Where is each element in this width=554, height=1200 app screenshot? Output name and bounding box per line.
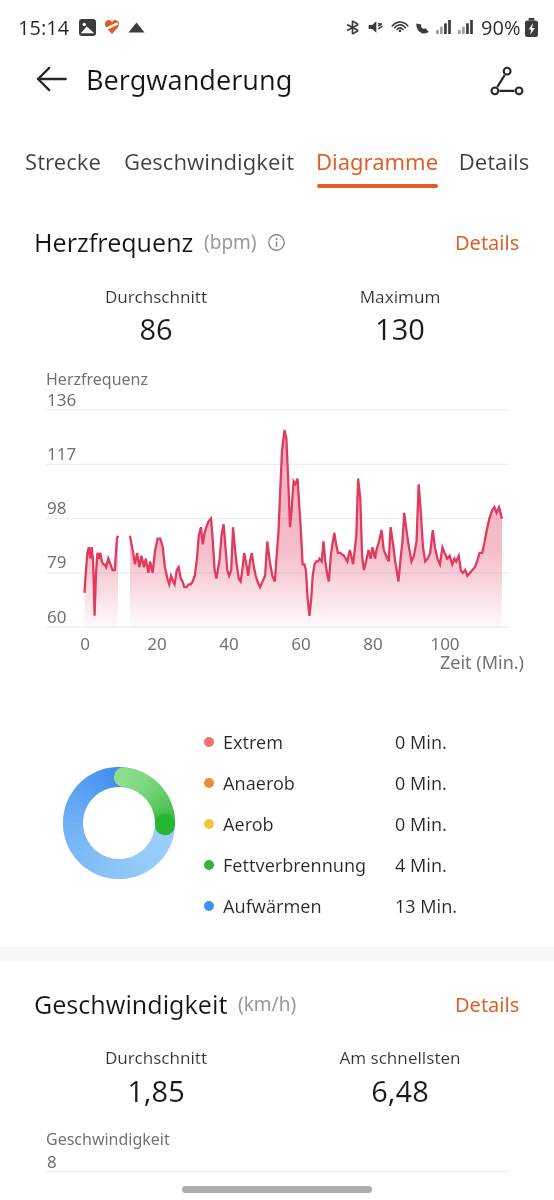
staticText: Anaerob <box>223 771 295 796</box>
staticText: Strecke <box>13 146 113 176</box>
button[interactable]: Aufwärmen <box>196 886 516 926</box>
staticText: 86 <box>56 309 256 348</box>
staticText: 4 Min. <box>395 853 447 878</box>
staticText: Bergwanderung <box>86 61 293 98</box>
staticText: 13 Min. <box>395 894 458 919</box>
staticText: 117 <box>47 442 77 465</box>
button[interactable]: Details <box>440 983 520 1025</box>
staticText: Details <box>455 229 520 256</box>
staticText: 79 <box>47 550 67 573</box>
staticText: 98 <box>47 496 67 519</box>
staticText: 15:14 <box>18 14 70 41</box>
staticText: 1,85 <box>56 1071 256 1110</box>
staticText: Geschwindigkeit <box>109 146 309 176</box>
staticText: 20 <box>132 632 182 655</box>
button[interactable]: Fettverbrennung <box>196 845 516 885</box>
staticText: Aerob <box>223 812 274 837</box>
staticText: 0 Min. <box>395 730 447 755</box>
staticText: (km/h) <box>238 991 297 1017</box>
button[interactable]: Info <box>265 231 287 253</box>
staticText: 0 Min. <box>395 812 447 837</box>
staticText: 60 <box>47 605 67 628</box>
staticText: 130 <box>300 309 500 348</box>
staticText: Geschwindigkeit <box>34 987 228 1021</box>
staticText: Details <box>447 146 541 176</box>
staticText: Aufwärmen <box>223 894 322 919</box>
staticText: Geschwindigkeit <box>46 1128 170 1150</box>
staticText: Diagramme <box>315 146 439 176</box>
button[interactable]: Diagramme <box>315 146 439 188</box>
staticText: Am schnellsten <box>300 1046 500 1069</box>
button[interactable]: Anaerob <box>196 763 516 803</box>
staticText: 0 Min. <box>395 771 447 796</box>
staticText: Herzfrequenz <box>46 368 148 390</box>
staticText: Extrem <box>223 730 284 755</box>
staticText: Details <box>455 991 520 1018</box>
button[interactable]: Details <box>440 221 520 263</box>
staticText: 100 <box>420 632 470 655</box>
staticText: 6,48 <box>300 1071 500 1110</box>
staticText: 80 <box>348 632 398 655</box>
staticText: Durchschnitt <box>56 285 256 308</box>
button[interactable]: Share <box>478 59 522 103</box>
staticText: Herzfrequenz <box>34 225 194 259</box>
staticText: (bpm) <box>204 229 257 255</box>
button[interactable]: Details <box>447 146 541 184</box>
button[interactable]: Aerob <box>196 804 516 844</box>
staticText: 136 <box>47 388 77 411</box>
staticText: Durchschnitt <box>56 1046 256 1069</box>
staticText: 90% <box>481 14 521 41</box>
staticText: 8 <box>47 1150 57 1173</box>
staticText: Zeit (Min.) <box>440 650 524 675</box>
button[interactable]: Extrem <box>196 722 516 762</box>
button[interactable]: Geschwindigkeit <box>109 146 309 184</box>
button[interactable]: Back <box>29 57 73 101</box>
staticText: 0 <box>60 632 110 655</box>
staticText: Fettverbrennung <box>223 853 367 878</box>
staticText: 60 <box>276 632 326 655</box>
staticText: Maximum <box>300 285 500 308</box>
staticText: 40 <box>204 632 254 655</box>
button[interactable]: Strecke <box>13 146 113 184</box>
